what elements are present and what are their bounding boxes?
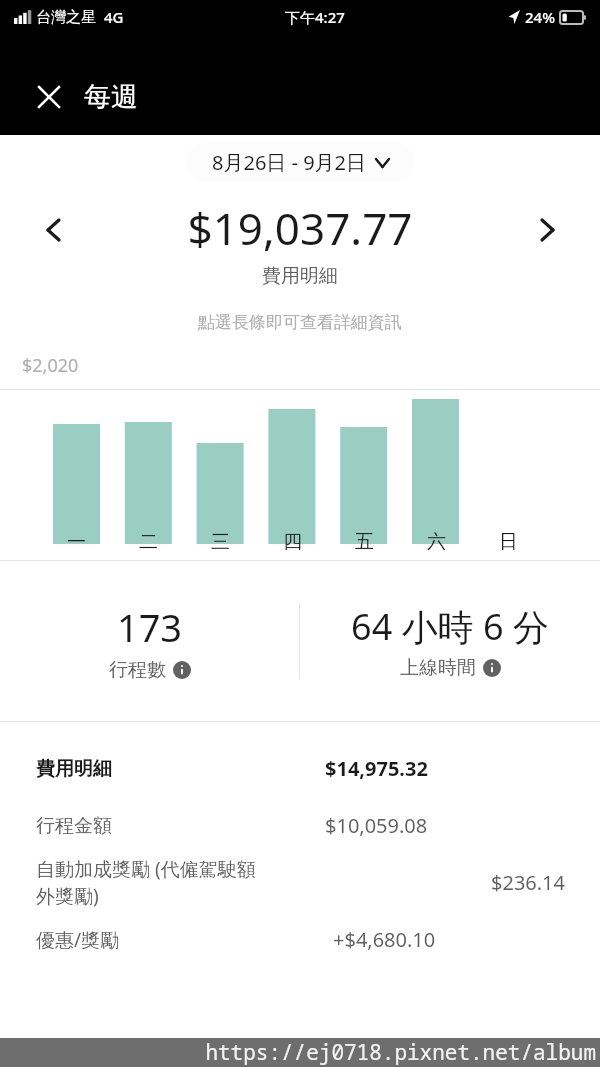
staticText: 行程金額 [36, 814, 112, 838]
button[interactable]: Close [26, 74, 72, 120]
staticText: 每週 [84, 80, 138, 114]
staticText: 二 [139, 530, 158, 554]
button[interactable]: 六 [413, 530, 485, 556]
staticText: https://ej0718.pixnet.net/album [205, 1038, 596, 1067]
staticText: 費用明細 [0, 264, 600, 288]
staticText: 日 [499, 530, 518, 554]
staticText: 四 [283, 530, 302, 554]
button[interactable]: 64 小時 6 分 [300, 590, 600, 692]
staticText: 一 [67, 530, 86, 554]
staticText: 24% [525, 7, 555, 27]
staticText: 點選長條即可查看詳細資訊 [0, 312, 600, 333]
staticText: 優惠/獎勵 [36, 927, 120, 953]
staticText: 自動加成獎勵 (代僱駕駛額外獎勵) [36, 856, 263, 909]
button[interactable]: 費用明細 [0, 740, 600, 797]
staticText: $2,020 [22, 353, 79, 378]
button[interactable]: 行程金額 [0, 797, 600, 854]
button[interactable]: 優惠/獎勵 [0, 911, 600, 968]
button[interactable]: 自動加成獎勵 (代僱駕駛額外獎勵) [0, 854, 600, 911]
staticText: $19,037.77 [0, 198, 600, 258]
button[interactable]: Next week [524, 207, 570, 253]
staticText: $10,059.08 [325, 812, 428, 839]
button[interactable]: 173 [0, 589, 299, 694]
button[interactable]: 四 [269, 530, 341, 556]
staticText: 費用明細 [36, 757, 112, 781]
staticText: 4G [104, 7, 124, 27]
staticText: 行程數 [109, 658, 166, 682]
button[interactable]: 五 [341, 530, 413, 556]
button[interactable]: 二 [125, 530, 197, 556]
staticText: 64 小時 6 分 [300, 602, 600, 651]
staticText: $236.14 [491, 869, 565, 896]
button[interactable]: 一 [53, 530, 125, 556]
staticText: 五 [355, 530, 374, 554]
staticText: 台灣之星 [36, 8, 96, 27]
button[interactable]: 三 [197, 530, 269, 556]
staticText: $14,975.32 [325, 755, 428, 782]
button[interactable]: Previous week [30, 207, 76, 253]
staticText: 下午4:27 [285, 7, 345, 27]
staticText: 六 [427, 530, 446, 554]
staticText: 上線時間 [400, 656, 476, 680]
button[interactable]: 8月26日 - 9月2日 [186, 142, 415, 183]
other: More info [173, 661, 191, 679]
button[interactable]: 日 [485, 530, 557, 556]
staticText: 173 [0, 601, 299, 653]
other: More info [483, 659, 501, 677]
staticText: +$4,680.10 [333, 926, 436, 953]
staticText: 8月26日 - 9月2日 [212, 149, 367, 176]
staticText: 三 [211, 530, 230, 554]
